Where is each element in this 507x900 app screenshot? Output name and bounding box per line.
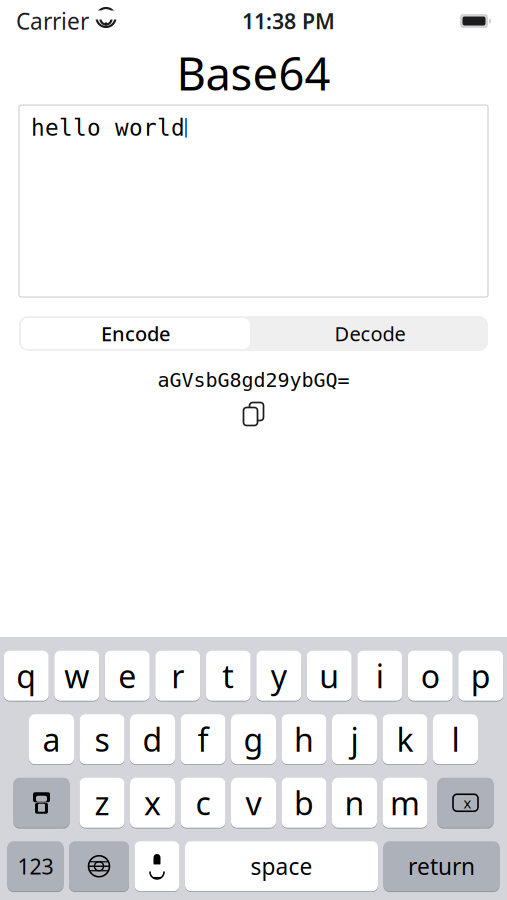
- button[interactable]: Copy result: [233, 398, 273, 430]
- button[interactable]: Encode: [19, 316, 252, 351]
- staticText: hello world: [31, 115, 185, 141]
- button[interactable]: Next keyboard: [69, 840, 129, 892]
- button[interactable]: b: [281, 777, 326, 828]
- staticText: c: [195, 781, 210, 824]
- button[interactable]: k: [382, 713, 427, 765]
- button[interactable]: a: [29, 713, 74, 765]
- staticText: w: [64, 654, 89, 697]
- staticText: aGVsbG8gd29ybGQ=: [157, 369, 349, 391]
- button[interactable]: c: [180, 777, 225, 828]
- staticText: j: [350, 718, 358, 760]
- staticText: 11:38 PM: [242, 7, 335, 35]
- staticText: e: [118, 654, 136, 697]
- staticText: x: [463, 793, 471, 812]
- staticText: v: [245, 781, 261, 824]
- staticText: n: [344, 781, 364, 824]
- staticText: Base64: [176, 43, 330, 103]
- button[interactable]: Shift: [13, 777, 69, 828]
- button[interactable]: s: [79, 713, 124, 765]
- button[interactable]: Input text: [19, 105, 488, 297]
- button[interactable]: p: [458, 650, 503, 701]
- staticText: o: [421, 654, 440, 697]
- staticText: h: [294, 718, 314, 760]
- button[interactable]: return: [383, 840, 499, 892]
- button[interactable]: l: [433, 713, 478, 765]
- button[interactable]: n: [332, 777, 377, 828]
- button[interactable]: g: [231, 713, 276, 765]
- button[interactable]: f: [180, 713, 225, 765]
- button[interactable]: i: [357, 650, 402, 701]
- button[interactable]: o: [408, 650, 453, 701]
- button[interactable]: v: [231, 777, 276, 828]
- staticText: t: [222, 654, 234, 697]
- staticText: Encode: [101, 320, 170, 347]
- staticText: u: [319, 654, 339, 697]
- button[interactable]: Decode: [252, 316, 488, 351]
- staticText: a: [42, 718, 60, 760]
- staticText: l: [451, 718, 459, 760]
- staticText: i: [376, 654, 384, 697]
- staticText: m: [390, 781, 420, 824]
- button[interactable]: e: [105, 650, 150, 701]
- button[interactable]: space: [185, 840, 378, 892]
- staticText: Decode: [334, 320, 405, 347]
- button[interactable]: y: [256, 650, 301, 701]
- button[interactable]: u: [307, 650, 352, 701]
- button[interactable]: x: [130, 777, 175, 828]
- button[interactable]: m: [382, 777, 427, 828]
- button[interactable]: d: [130, 713, 175, 765]
- button[interactable]: w: [54, 650, 99, 701]
- staticText: q: [16, 654, 36, 697]
- button[interactable]: h: [281, 713, 326, 765]
- staticText: p: [471, 654, 491, 697]
- staticText: z: [94, 781, 109, 824]
- staticText: r: [171, 654, 184, 697]
- button[interactable]: t: [206, 650, 251, 701]
- staticText: 123: [17, 852, 53, 880]
- staticText: g: [243, 718, 263, 760]
- button[interactable]: Numbers: [7, 840, 63, 892]
- staticText: return: [408, 851, 475, 881]
- staticText: space: [250, 851, 312, 881]
- button[interactable]: z: [79, 777, 124, 828]
- staticText: d: [142, 718, 162, 760]
- staticText: y: [271, 654, 287, 697]
- staticText: s: [94, 718, 109, 760]
- button[interactable]: Delete: [437, 777, 493, 828]
- button[interactable]: r: [155, 650, 200, 701]
- staticText: Carrier: [16, 6, 89, 36]
- button[interactable]: Dictate: [134, 840, 179, 892]
- button[interactable]: j: [332, 713, 377, 765]
- staticText: k: [396, 718, 413, 760]
- button[interactable]: q: [4, 650, 49, 701]
- staticText: x: [144, 781, 161, 824]
- staticText: f: [197, 718, 208, 760]
- staticText: b: [294, 781, 314, 824]
